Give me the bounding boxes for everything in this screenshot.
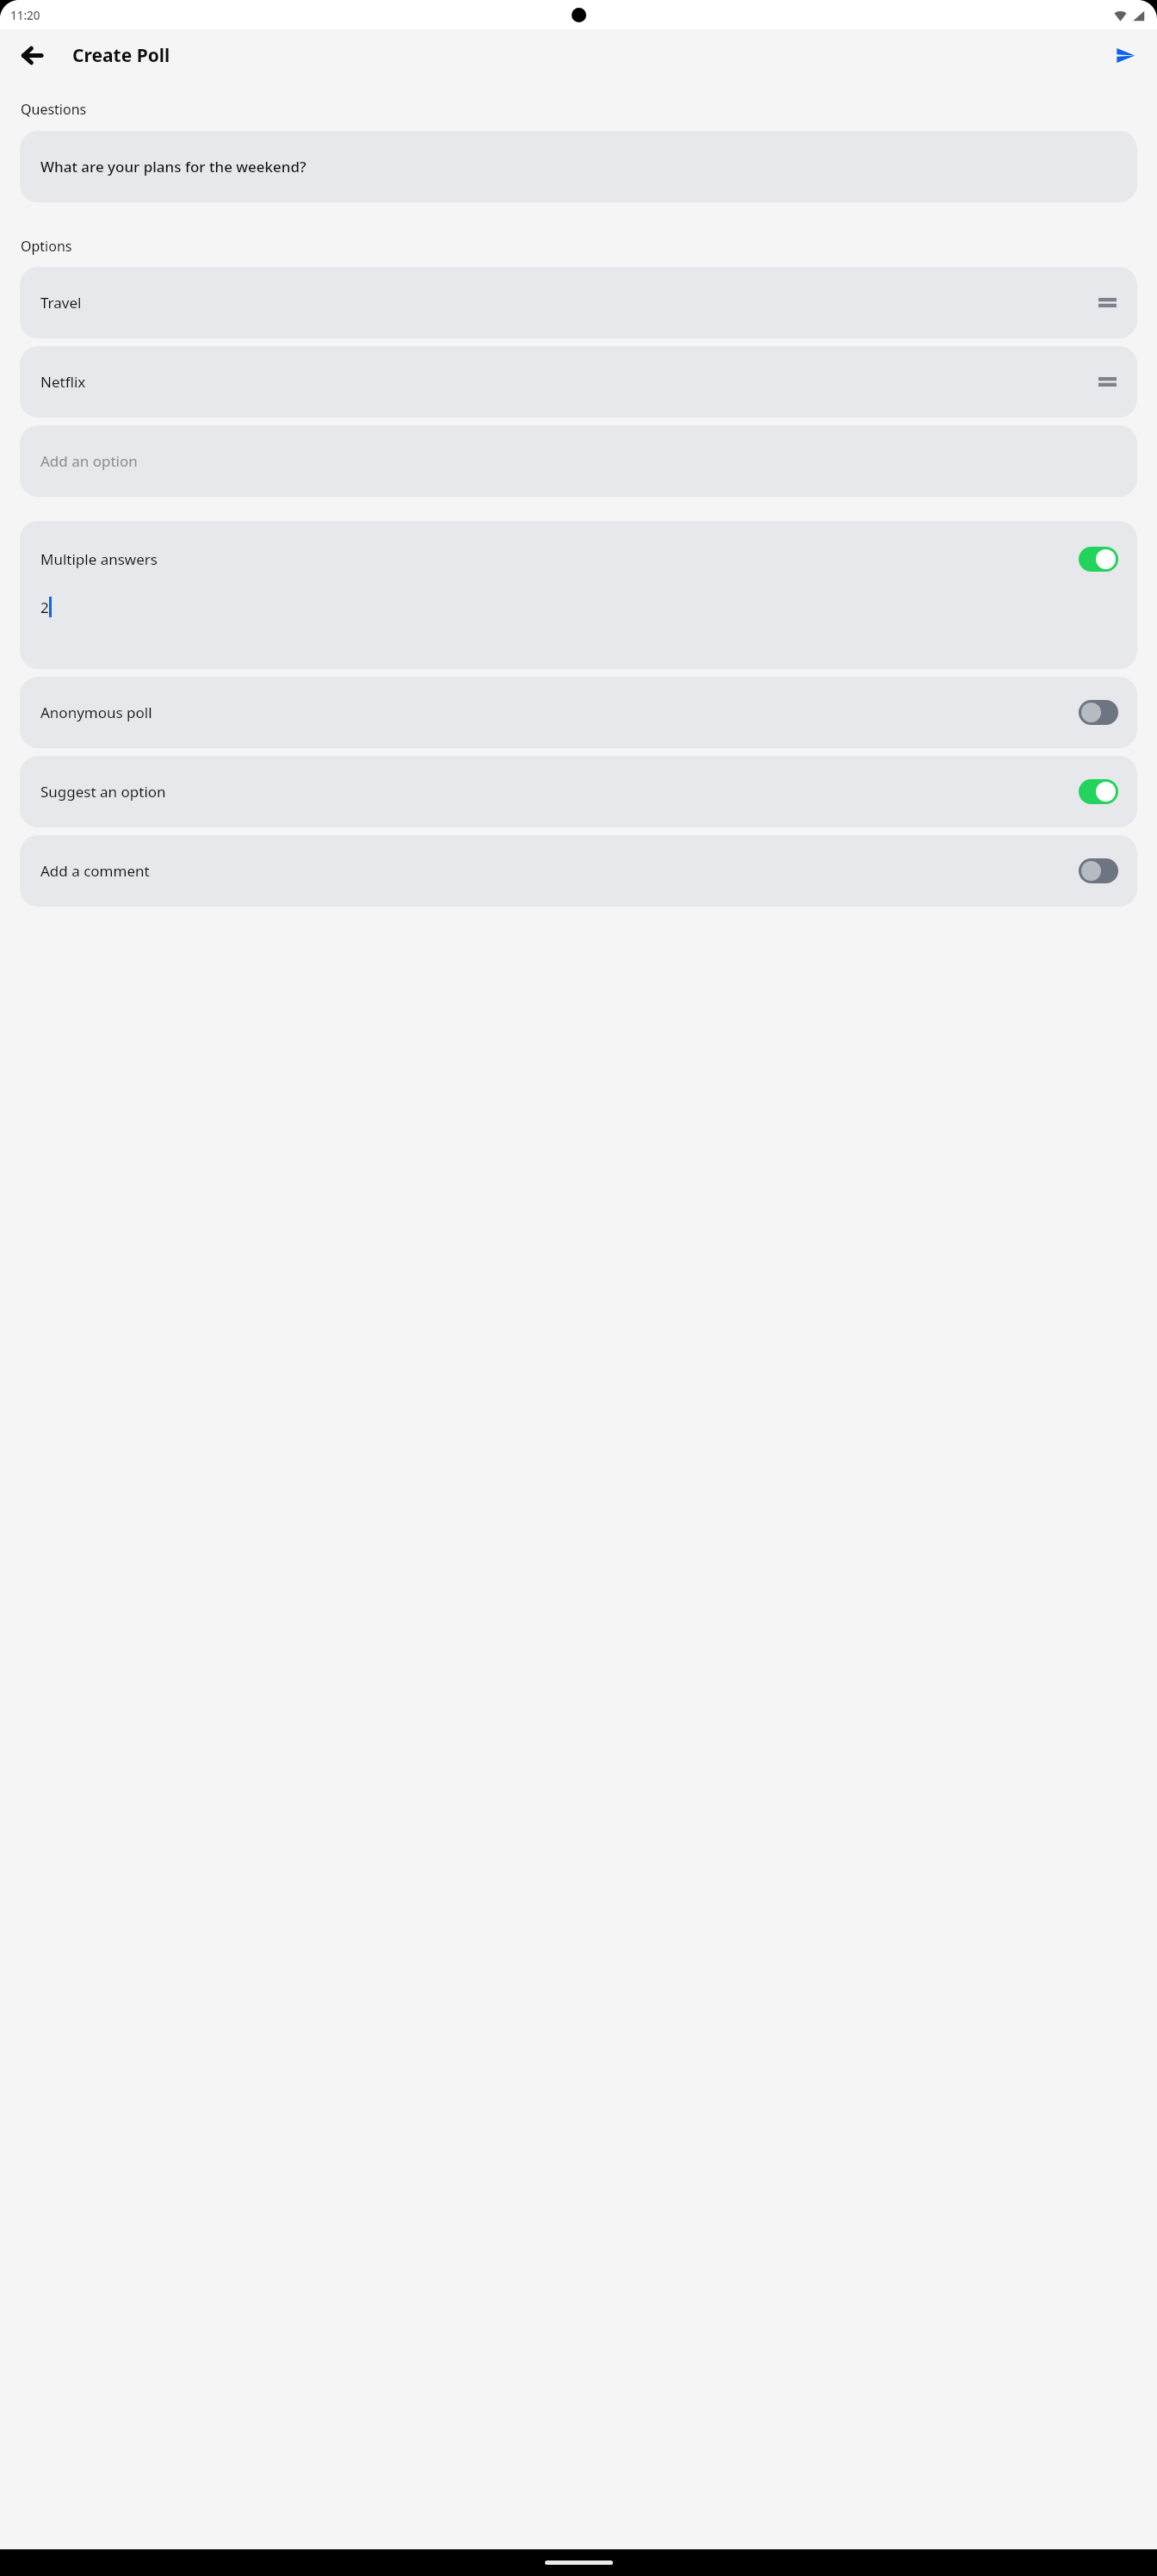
staticText: Questions [21,100,87,119]
button[interactable] [1079,858,1118,883]
staticText: Add an option [40,451,138,471]
staticText: Anonymous poll [40,703,152,722]
button[interactable]: Travel [20,267,1137,338]
button[interactable] [1079,700,1118,725]
button[interactable]: Anonymous poll [20,677,1137,748]
staticText: Netflix [40,372,86,392]
staticText: Suggest an option [40,782,166,802]
staticText: What are your plans for the weekend? [40,157,306,176]
staticText: Options [21,237,72,256]
staticText: Add a comment [40,861,150,881]
staticText: 11:20 [10,8,40,23]
button[interactable]: Back [12,35,52,75]
button[interactable] [1079,779,1118,804]
button[interactable]: Add an option [20,425,1137,497]
button[interactable]: Multiple answers [20,521,1137,669]
button[interactable]: What are your plans for the weekend? [20,131,1137,202]
staticText: 2 [40,598,49,617]
button[interactable] [1079,547,1118,572]
button[interactable]: Send [1105,35,1145,75]
staticText: Multiple answers [40,549,158,569]
staticText: Create Poll [72,43,170,68]
staticText: Travel [40,293,82,313]
button[interactable]: Add a comment [20,835,1137,907]
button[interactable]: Suggest an option [20,756,1137,827]
button[interactable]: Netflix [20,346,1137,418]
